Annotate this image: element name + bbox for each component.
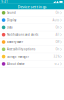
staticText: Notifications and alerts: [7, 33, 38, 36]
staticText: Battery saver: [7, 40, 23, 44]
button[interactable]: Battery saver: [0, 38, 64, 46]
button[interactable]: Storage manager: [0, 53, 64, 60]
button[interactable]: About device: [0, 60, 64, 68]
staticText: 9:41: [1, 0, 8, 4]
staticText: Data: [7, 26, 12, 29]
staticText: 32%: [53, 55, 59, 58]
staticText: All: [55, 33, 59, 36]
staticText: v12: [54, 62, 59, 66]
staticText: On: [55, 26, 59, 29]
button[interactable]: Display: [0, 17, 64, 24]
button[interactable]: Notifications and alerts: [0, 31, 64, 38]
staticText: Display: [7, 18, 16, 22]
staticText: About device: [7, 62, 25, 66]
staticText: Device settings: [17, 4, 46, 9]
staticText: Sound: [7, 11, 16, 14]
staticText: On: [55, 47, 59, 51]
button[interactable]: Sound: [0, 9, 64, 17]
staticText: Accessibility options: [7, 47, 35, 51]
staticText: On: [55, 11, 59, 14]
staticText: Off: [55, 40, 59, 44]
button[interactable]: Data: [0, 24, 64, 31]
staticText: Auto: [52, 18, 59, 22]
staticText: Storage manager: [7, 55, 29, 58]
button[interactable]: Accessibility options: [0, 46, 64, 53]
